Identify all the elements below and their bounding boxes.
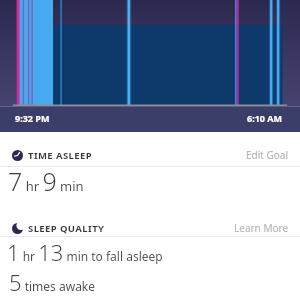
button[interactable]: 1 hr 13 min to fall asleep <box>7 237 163 267</box>
staticText: SLEEP QUALITY <box>28 222 105 235</box>
button[interactable]: Edit Goal <box>246 148 289 162</box>
staticText: 6:10 AM <box>247 112 283 124</box>
button[interactable]: 7 hr 9 min <box>8 164 84 198</box>
button[interactable]: Learn More <box>234 221 289 235</box>
button[interactable]: TIME ASLEEP <box>0 146 300 164</box>
staticText: TIME ASLEEP <box>28 149 92 162</box>
button[interactable]: 5 times awake <box>9 267 96 297</box>
button[interactable]: SLEEP QUALITY <box>0 220 300 236</box>
staticText: 9:32 PM <box>15 112 50 124</box>
